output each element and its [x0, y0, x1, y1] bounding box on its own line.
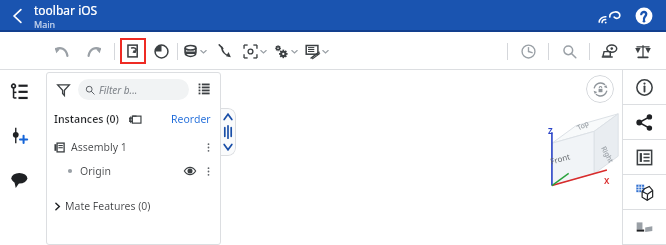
staticText: Filter b... — [99, 83, 138, 97]
button[interactable]: Assembly 1 — [46, 135, 221, 159]
button[interactable]: Help — [632, 4, 656, 28]
button[interactable]: List options — [194, 79, 214, 99]
button[interactable]: Toggle Origin visibility — [181, 162, 199, 180]
button[interactable]: Comments — [4, 164, 34, 194]
button[interactable]: Insert — [120, 38, 146, 64]
button[interactable]: Document — [623, 140, 666, 175]
button[interactable]: Drawing — [305, 40, 329, 62]
button[interactable]: Info — [623, 70, 666, 105]
staticText: Assembly 1 — [71, 140, 127, 154]
button[interactable]: Filter — [53, 79, 73, 99]
staticText: Top — [575, 119, 591, 133]
button[interactable]: Back — [6, 4, 30, 28]
button[interactable]: Mass properties — [632, 40, 654, 62]
button[interactable]: Mate Features (0) — [46, 195, 221, 217]
button[interactable]: Time — [517, 40, 539, 62]
staticText: Mate Features (0) — [65, 199, 151, 213]
staticText: Right — [598, 145, 616, 165]
button[interactable]: Connection status — [600, 4, 624, 28]
button[interactable]: Share — [623, 105, 666, 140]
button[interactable]: Add folder — [126, 110, 144, 128]
staticText: Instances (0) — [54, 112, 119, 126]
button[interactable]: Mate connector — [214, 40, 236, 62]
button[interactable]: Filter b... — [78, 79, 189, 100]
staticText: Origin — [80, 164, 111, 178]
button[interactable]: Transform — [243, 40, 267, 62]
button[interactable]: Search — [558, 40, 580, 62]
button[interactable]: Measure — [599, 40, 621, 62]
button[interactable]: Undo — [50, 40, 72, 62]
button[interactable]: Origin options — [200, 163, 216, 179]
button[interactable]: Resize panel — [220, 108, 236, 156]
staticText: Reorder — [171, 112, 211, 126]
button[interactable]: Rotate lock — [586, 75, 614, 103]
button[interactable]: Redo — [84, 40, 106, 62]
button[interactable]: Feature list — [4, 76, 34, 106]
button[interactable]: Versions — [623, 210, 666, 245]
staticText: toolbar iOS — [34, 2, 98, 18]
button[interactable]: History — [150, 40, 172, 62]
staticText: Z — [548, 125, 553, 136]
button[interactable]: Add feature — [4, 120, 34, 150]
staticText: Front — [549, 150, 571, 167]
button[interactable]: Origin — [46, 159, 221, 183]
button[interactable]: Assembly 1 options — [200, 139, 216, 155]
button[interactable]: Reorder — [169, 110, 213, 128]
staticText: Main — [34, 18, 56, 30]
button[interactable]: Parts — [623, 175, 666, 210]
button[interactable]: Mate — [183, 40, 207, 62]
button[interactable]: Assembly features — [274, 40, 298, 62]
staticText: X — [604, 175, 610, 186]
